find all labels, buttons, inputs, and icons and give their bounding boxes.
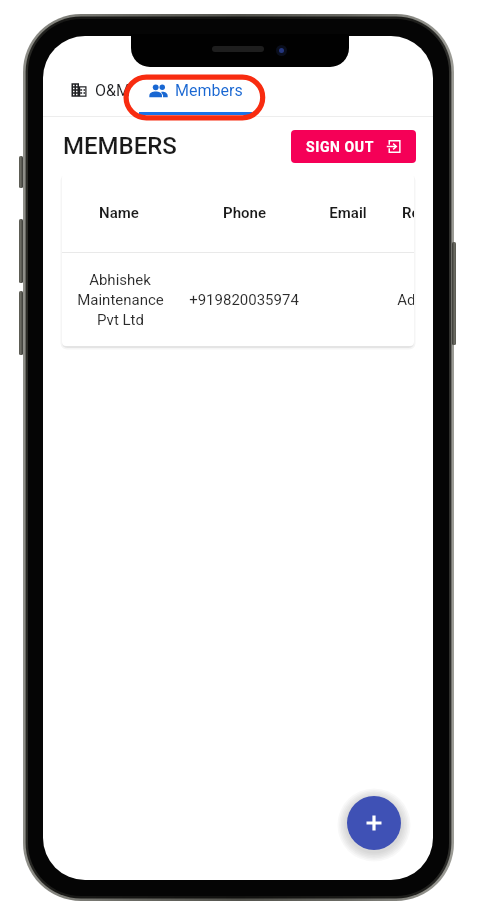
staticText: Abhishek — [89, 271, 151, 289]
staticText: Email — [329, 204, 367, 222]
staticText: Phone — [223, 204, 266, 222]
staticText: Role — [402, 204, 414, 222]
button[interactable]: Members — [139, 72, 252, 108]
staticText: Admin — [397, 291, 414, 309]
button[interactable]: O&M — [61, 72, 139, 108]
staticText: Maintenance — [77, 291, 164, 309]
button[interactable]: SIGN OUT — [291, 130, 416, 163]
button[interactable]: Add — [347, 796, 401, 850]
staticText: MEMBERS — [63, 132, 177, 160]
staticText: +919820035974 — [189, 291, 299, 309]
staticText: Pvt Ltd — [97, 311, 144, 329]
staticText: Members — [175, 81, 243, 100]
staticText: O&M — [95, 81, 130, 100]
staticText: Name — [99, 204, 139, 222]
staticText: SIGN OUT — [306, 139, 374, 155]
